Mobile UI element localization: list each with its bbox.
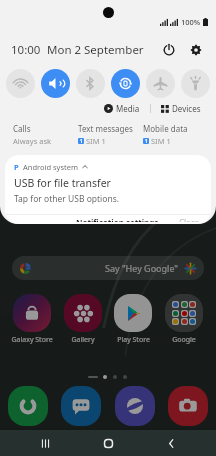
button[interactable]: Flight mode: [146, 69, 175, 98]
button[interactable]: Sound: [41, 69, 70, 98]
staticText: Mobile data: [143, 123, 188, 134]
button[interactable]: Media: [101, 101, 143, 116]
button[interactable]: Google: [160, 294, 208, 345]
button[interactable]: Power off: [159, 40, 179, 60]
staticText: Galaxy Store: [11, 335, 53, 345]
button[interactable]: Settings: [186, 40, 206, 60]
button[interactable]: Wi-Fi: [6, 69, 35, 98]
button[interactable]: Home: [90, 430, 126, 456]
button[interactable]: Devices: [158, 101, 204, 116]
button[interactable]: Bluetooth: [76, 69, 105, 98]
button[interactable]: Play Store: [109, 294, 157, 345]
staticText: SIM 1: [86, 136, 106, 146]
button[interactable]: Back: [153, 430, 189, 456]
staticText: Android system: [23, 162, 78, 172]
staticText: Devices: [172, 103, 201, 114]
button[interactable]: Internet: [115, 386, 155, 426]
staticText: Google: [172, 335, 196, 345]
staticText: Tap for other USB options.: [14, 193, 120, 205]
staticText: Say "Hey Google": [105, 262, 179, 274]
staticText: Notification settings: [76, 217, 159, 222]
staticText: Mon 2 September: [47, 42, 144, 58]
button[interactable]: Auto rotate: [111, 69, 140, 98]
button[interactable]: Text messages: [78, 123, 143, 146]
button[interactable]: Clear: [175, 215, 203, 224]
button[interactable]: P: [5, 155, 211, 214]
button[interactable]: Messages: [61, 386, 101, 426]
staticText: Clear: [179, 217, 199, 222]
staticText: Play Store: [117, 335, 150, 345]
button[interactable]: Galaxy Store: [8, 294, 56, 345]
button[interactable]: Calls: [13, 123, 78, 146]
staticText: Calls: [13, 123, 31, 134]
staticText: Text messages: [78, 123, 133, 134]
staticText: 1: [80, 138, 83, 144]
button[interactable]: Notification settings: [72, 215, 163, 224]
button[interactable]: Gallery: [59, 294, 107, 345]
button[interactable]: Mobile data: [143, 123, 208, 146]
button[interactable]: Flashlight: [181, 69, 210, 98]
staticText: P: [14, 162, 19, 172]
staticText: Media: [116, 103, 140, 114]
staticText: 100%: [181, 17, 201, 27]
staticText: USB for file transfer: [14, 176, 111, 190]
staticText: SIM 1: [151, 136, 171, 146]
button[interactable]: Phone: [8, 386, 48, 426]
staticText: Gallery: [71, 335, 95, 345]
staticText: 1: [145, 138, 148, 144]
button[interactable]: Camera: [168, 386, 208, 426]
staticText: 10:00: [11, 42, 41, 58]
staticText: Always ask: [13, 136, 52, 146]
button[interactable]: Say "Hey Google": [12, 256, 204, 280]
button[interactable]: Recents: [27, 430, 63, 456]
